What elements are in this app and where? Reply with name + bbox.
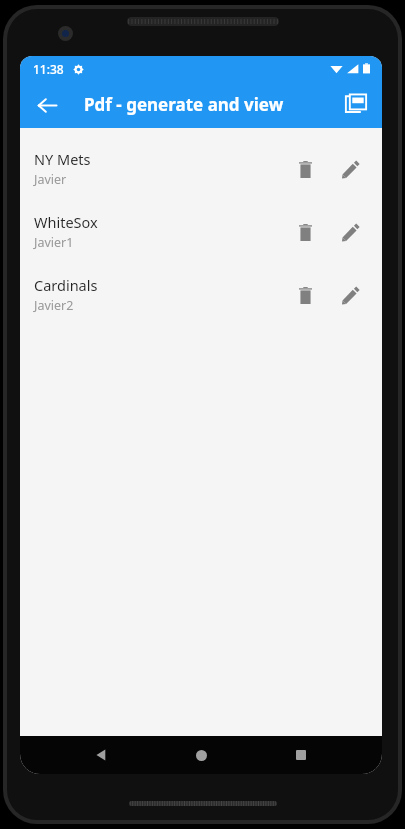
button[interactable]: Delete NY Mets xyxy=(285,149,325,189)
button[interactable]: Back xyxy=(26,84,68,126)
button[interactable]: NY Mets xyxy=(20,137,382,200)
button[interactable]: Delete Cardinals xyxy=(285,275,325,315)
staticText: Javier2 xyxy=(34,297,74,314)
button[interactable]: Edit NY Mets xyxy=(330,149,370,189)
button[interactable]: Home xyxy=(182,736,220,774)
staticText: Pdf - generate and view xyxy=(84,93,284,116)
button[interactable]: Cardinals xyxy=(20,263,382,326)
staticText: WhiteSox xyxy=(34,212,98,232)
staticText: Cardinals xyxy=(34,275,98,295)
button[interactable]: Recent apps xyxy=(282,736,320,774)
button[interactable]: Generate PDF xyxy=(335,84,377,126)
button[interactable]: Edit Cardinals xyxy=(330,275,370,315)
staticText: 11:38 xyxy=(33,61,64,77)
button[interactable]: Edit WhiteSox xyxy=(330,212,370,252)
staticText: Javier1 xyxy=(34,234,74,251)
button[interactable]: Back xyxy=(82,736,120,774)
staticText: NY Mets xyxy=(34,149,91,169)
button[interactable]: WhiteSox xyxy=(20,200,382,263)
button[interactable]: Delete WhiteSox xyxy=(285,212,325,252)
staticText: Javier xyxy=(34,171,67,188)
